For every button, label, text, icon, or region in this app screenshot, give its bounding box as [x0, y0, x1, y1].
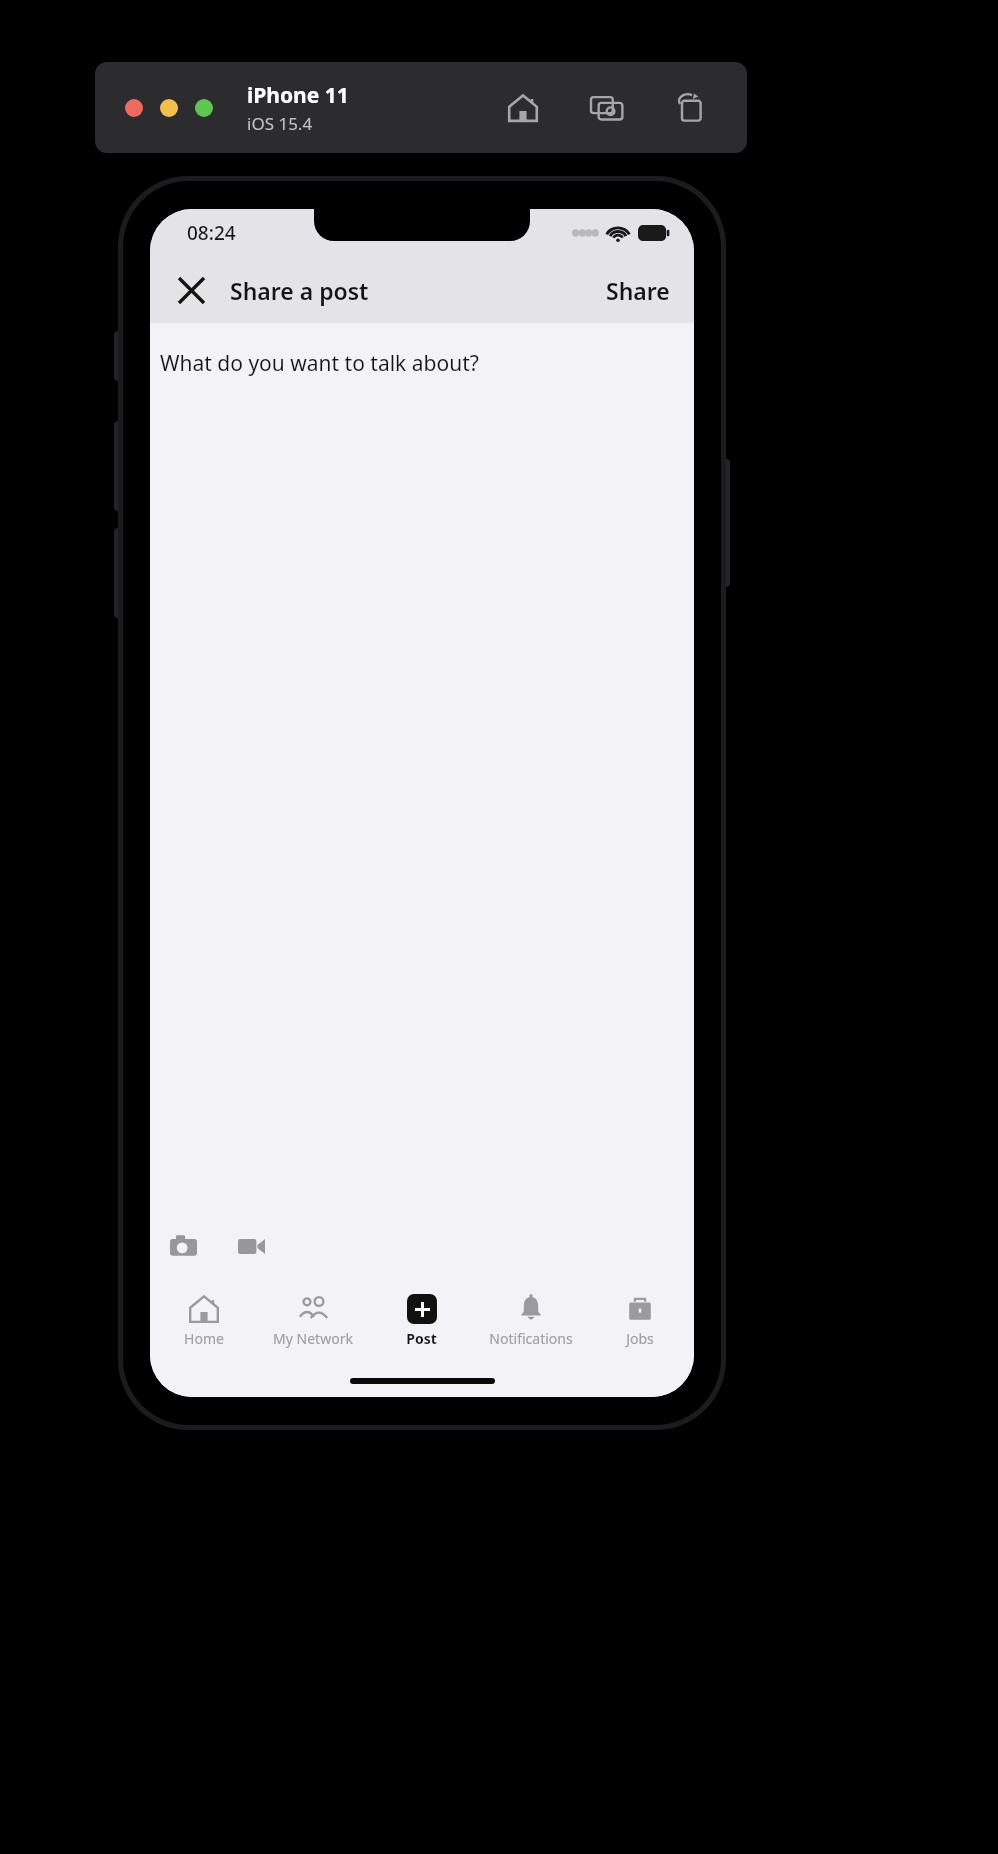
button[interactable]: Home — [150, 1277, 258, 1365]
button[interactable]: Close — [168, 267, 214, 313]
staticText: My Network — [273, 1329, 353, 1348]
button[interactable]: My Network — [258, 1277, 367, 1365]
staticText: What do you want to talk about? — [160, 349, 479, 378]
button[interactable] — [125, 99, 143, 117]
button[interactable] — [160, 99, 178, 117]
button[interactable]: Rotate — [671, 88, 711, 128]
staticText: Home — [184, 1329, 224, 1348]
button[interactable]: Jobs — [585, 1277, 694, 1365]
staticText: Share a post — [230, 275, 369, 306]
button[interactable]: Add photo — [166, 1229, 200, 1263]
staticText: Share — [606, 275, 670, 306]
staticText: iPhone 11 — [247, 81, 349, 110]
button[interactable]: Post — [367, 1277, 476, 1365]
button[interactable]: Notifications — [476, 1277, 585, 1365]
staticText: 08:24 — [187, 220, 236, 246]
button[interactable]: Home — [503, 88, 543, 128]
staticText: Notifications — [489, 1329, 573, 1348]
button[interactable] — [195, 99, 213, 117]
staticText: Jobs — [626, 1329, 654, 1348]
button[interactable]: Share — [590, 267, 686, 314]
button[interactable]: Screenshot — [587, 88, 627, 128]
button[interactable]: Add video — [234, 1229, 268, 1263]
staticText: Post — [406, 1329, 437, 1348]
staticText: iOS 15.4 — [247, 112, 313, 135]
